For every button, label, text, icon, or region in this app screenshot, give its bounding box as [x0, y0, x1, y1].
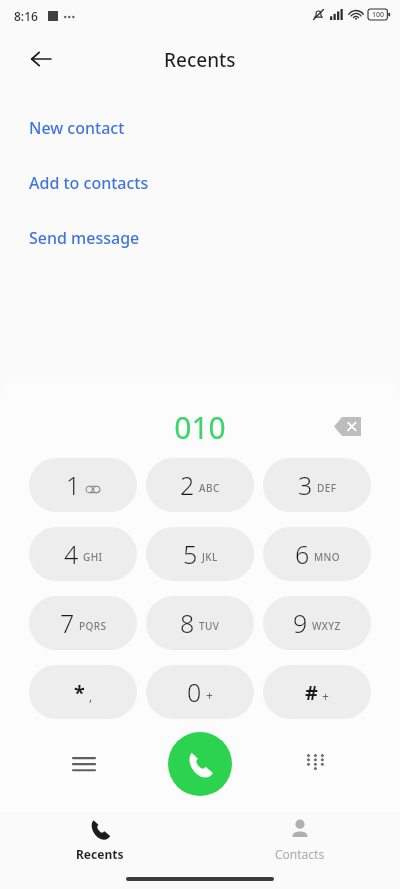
staticText: 6: [295, 537, 310, 571]
staticText: TUV: [199, 619, 220, 633]
button[interactable]: 2: [146, 458, 254, 512]
staticText: 4: [64, 537, 79, 571]
staticText: Recents: [76, 846, 124, 862]
staticText: Add to contacts: [29, 172, 149, 194]
staticText: #: [305, 679, 318, 706]
staticText: 010: [0, 407, 400, 448]
staticText: +: [322, 688, 329, 704]
button[interactable]: Call: [168, 732, 232, 796]
staticText: 0: [187, 675, 202, 709]
staticText: ABC: [199, 481, 220, 495]
staticText: DEF: [317, 481, 337, 495]
staticText: 8:16: [14, 8, 38, 24]
button[interactable]: *: [29, 665, 137, 719]
button[interactable]: 3: [263, 458, 371, 512]
staticText: Recents: [164, 47, 236, 73]
staticText: 9: [293, 606, 308, 640]
staticText: 7: [60, 606, 75, 640]
button[interactable]: Send message: [0, 223, 400, 253]
staticText: New contact: [29, 117, 125, 139]
staticText: JKL: [202, 550, 218, 564]
button[interactable]: 8: [146, 596, 254, 650]
staticText: 3: [298, 468, 313, 502]
button[interactable]: 9: [263, 596, 371, 650]
staticText: WXYZ: [312, 619, 341, 633]
staticText: Send message: [29, 227, 140, 249]
staticText: +: [206, 687, 213, 703]
button[interactable]: 1: [29, 458, 137, 512]
staticText: Contacts: [275, 846, 325, 862]
button[interactable]: #: [263, 665, 371, 719]
button[interactable]: Call log options: [60, 740, 108, 788]
button[interactable]: New contact: [0, 113, 400, 143]
staticText: 2: [180, 468, 195, 502]
button[interactable]: 4: [29, 527, 137, 581]
button[interactable]: 5: [146, 527, 254, 581]
button[interactable]: 0: [146, 665, 254, 719]
button[interactable]: Backspace: [326, 405, 368, 447]
button[interactable]: Hide dialpad: [292, 740, 340, 788]
button[interactable]: 7: [29, 596, 137, 650]
button[interactable]: Back: [20, 38, 62, 80]
button[interactable]: Add to contacts: [0, 168, 400, 198]
staticText: MNO: [314, 550, 340, 564]
staticText: 8: [180, 606, 195, 640]
staticText: *: [74, 679, 85, 706]
button[interactable]: Contacts: [200, 811, 400, 869]
staticText: 100: [372, 10, 385, 20]
staticText: ,: [89, 688, 93, 704]
button[interactable]: 6: [263, 527, 371, 581]
button[interactable]: Recents: [0, 811, 200, 869]
staticText: GHI: [83, 550, 103, 564]
staticText: PQRS: [79, 619, 107, 633]
staticText: 1: [66, 468, 81, 502]
staticText: 5: [183, 537, 198, 571]
